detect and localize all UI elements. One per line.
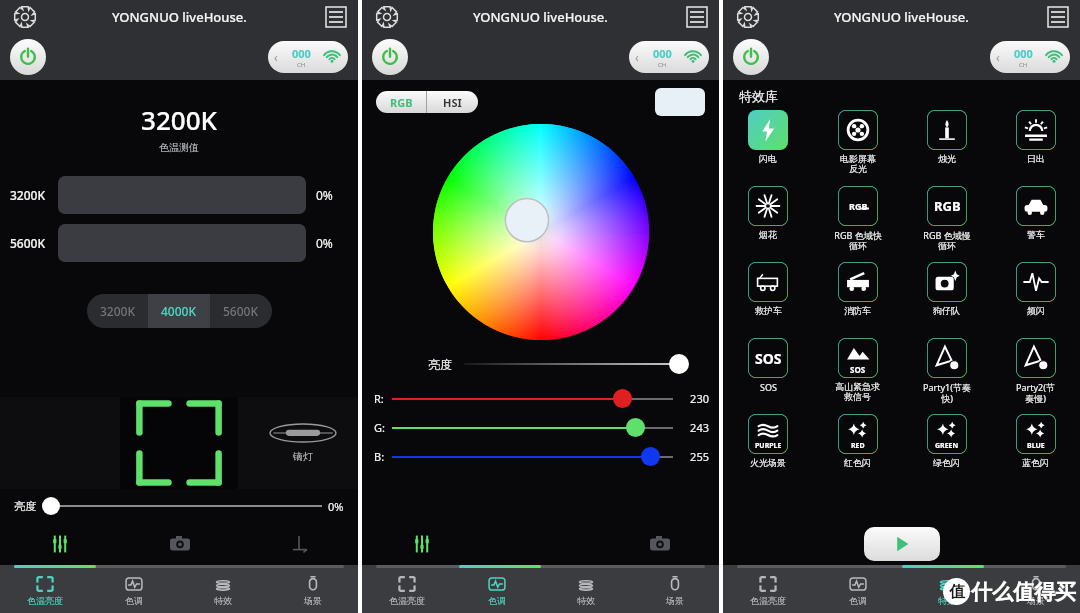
staticText: 243 [681,420,709,435]
button[interactable]: 色温亮度 [723,568,813,613]
button[interactable]: Power [372,39,408,75]
button[interactable]: Settings [12,4,38,30]
button[interactable]: Color wheel [433,124,649,340]
button[interactable]: 消防车 [813,262,902,338]
staticText: 警车 [1027,229,1045,240]
staticText: 闪电 [759,153,777,164]
button[interactable]: 频闪 [991,262,1080,338]
button[interactable]: 日出 [991,110,1080,186]
button[interactable]: RGB [813,186,902,262]
staticText: 5600K [223,303,259,319]
staticText: 救护车 [755,305,782,316]
button[interactable]: Settings [374,4,400,30]
button[interactable]: Adjust [362,523,481,565]
staticText: 000 [653,46,672,61]
button[interactable]: Channel [629,41,709,73]
staticText: 狗仔队 [933,305,960,316]
staticText: SOS [850,364,866,375]
staticText: G: [374,420,388,435]
staticText: 特效 [577,595,595,606]
staticText: 色温测值 [0,141,358,154]
staticText: ‹ [274,49,278,65]
staticText: 频闪 [1027,305,1045,316]
staticText: 红色闪 [844,457,871,468]
button[interactable]: 特效 [902,568,991,613]
button[interactable]: Power [733,39,769,75]
button[interactable]: 色温亮度 [0,568,89,613]
staticText: 色调 [849,595,867,606]
staticText: 特效 [214,595,232,606]
button[interactable]: Channel [268,41,348,73]
staticText: 值 [949,582,965,602]
button[interactable]: Menu [1048,7,1068,27]
button[interactable]: 3200K [87,294,148,328]
button[interactable]: Channel [990,41,1070,73]
staticText: HSI [443,95,462,110]
button[interactable]: 特效 [541,568,630,613]
button[interactable]: 烟花 [723,186,813,262]
button[interactable]: 色调 [89,568,178,613]
staticText: B: [374,449,388,464]
button[interactable]: 5600K [210,294,272,328]
button[interactable]: Adjust [0,523,120,565]
button[interactable]: 电影屏幕 反光 [813,110,902,186]
staticText: 0% [316,187,348,203]
button[interactable]: SOS [813,338,902,414]
button[interactable]: Camera [600,523,719,565]
button[interactable]: RGB [902,186,991,262]
staticText: 特效库 [739,88,778,104]
button[interactable]: Settings [735,4,761,30]
staticText: 日出 [1027,153,1045,164]
button[interactable]: RGB [376,91,426,113]
button[interactable]: BLUE [991,414,1080,490]
button[interactable]: 色调 [452,568,541,613]
button[interactable] [641,447,660,466]
button[interactable]: 4000K [148,294,210,328]
button[interactable]: Play [864,527,940,561]
button[interactable]: 色调 [813,568,902,613]
button[interactable]: 警车 [991,186,1080,262]
staticText: YONGNUO liveHouse. [834,8,969,26]
staticText: 绿色闪 [933,457,960,468]
staticText: YONGNUO liveHouse. [473,8,608,26]
button[interactable]: Menu [687,7,707,27]
button[interactable]: RED [813,414,902,490]
staticText: SOS [760,381,777,393]
button[interactable]: 场景 [268,568,358,613]
button[interactable]: Axis [239,523,358,565]
button[interactable]: 色温亮度 [362,568,452,613]
button[interactable]: 场景 [991,568,1080,613]
button[interactable]: Camera [120,523,239,565]
button[interactable] [58,176,306,214]
button[interactable]: 特效 [178,568,268,613]
staticText: 特效 [938,595,956,606]
button[interactable]: HSI [427,91,478,113]
button[interactable]: Party2(节 奏慢) [991,338,1080,414]
button[interactable] [626,418,645,437]
button[interactable]: Party1(节奏 快) [902,338,991,414]
button[interactable]: Menu [326,7,346,27]
staticText: CH [297,61,306,69]
button[interactable]: 狗仔队 [902,262,991,338]
button[interactable] [669,354,689,374]
button[interactable]: 场景 [630,568,719,613]
staticText: PURPLE [755,441,782,451]
staticText: Party2(节 奏慢) [1016,381,1055,404]
button[interactable] [613,389,632,408]
staticText: 场景 [666,595,684,606]
staticText: Party1(节奏 快) [923,381,971,404]
button[interactable]: PURPLE [723,414,813,490]
button[interactable]: Color preview [655,88,705,116]
button[interactable]: Power [10,39,46,75]
button[interactable] [42,497,60,515]
button[interactable]: 闪电 [723,110,813,186]
staticText: SOS [755,349,782,368]
button[interactable]: GREEN [902,414,991,490]
staticText: 色调 [125,595,143,606]
button[interactable]: 救护车 [723,262,813,338]
staticText: RGB [849,200,868,212]
button[interactable]: 烛光 [902,110,991,186]
staticText: RGB [390,95,413,110]
button[interactable] [58,224,306,262]
button[interactable]: SOS [723,338,813,414]
